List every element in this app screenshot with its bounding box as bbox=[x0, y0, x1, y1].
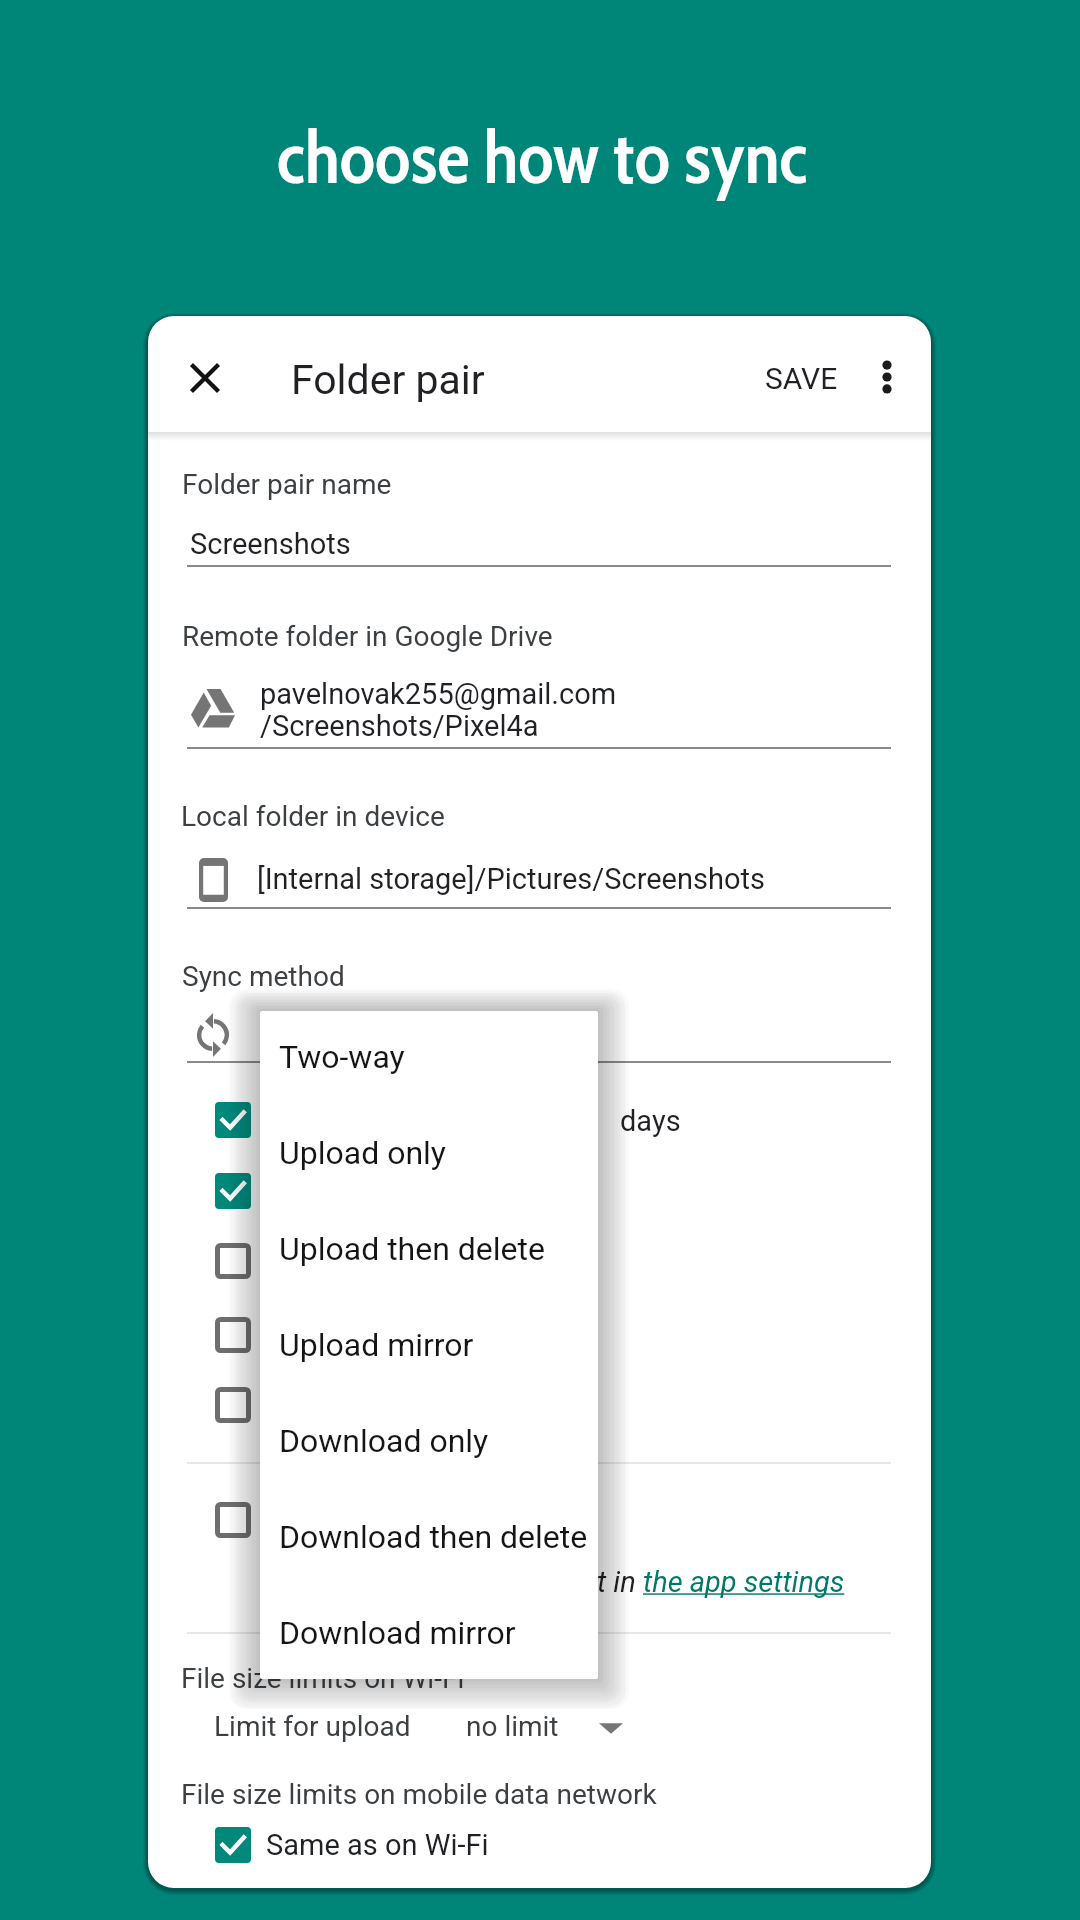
staticText: File size limits on Wi-Fi bbox=[181, 1662, 465, 1695]
button[interactable]: Checked bbox=[215, 1827, 251, 1863]
staticText: Upload only bbox=[279, 1134, 446, 1172]
staticText: Upload mirror bbox=[279, 1326, 474, 1364]
button[interactable]: Checked bbox=[215, 1173, 251, 1209]
button[interactable]: Download only bbox=[279, 1422, 591, 1494]
button[interactable]: Change limit bbox=[593, 1710, 629, 1746]
button[interactable]: Two-way bbox=[279, 1038, 591, 1110]
button[interactable]: Upload only bbox=[279, 1134, 591, 1206]
staticText: t in bbox=[597, 1565, 643, 1599]
button[interactable]: Folder pair bbox=[291, 356, 485, 404]
staticText: File size limits on mobile data network bbox=[181, 1778, 657, 1811]
staticText: no limit bbox=[466, 1710, 559, 1743]
button[interactable]: Unchecked bbox=[215, 1502, 251, 1538]
staticText: Sync method bbox=[182, 960, 345, 993]
button[interactable]: Close bbox=[174, 347, 236, 409]
button[interactable]: Download mirror bbox=[279, 1614, 591, 1686]
staticText: Local folder in device bbox=[181, 800, 445, 833]
staticText: SAVE bbox=[765, 361, 838, 396]
button[interactable]: Checked bbox=[215, 1102, 251, 1138]
staticText: Download mirror bbox=[279, 1614, 516, 1652]
staticText: [Internal storage]/Pictures/Screenshots bbox=[257, 862, 765, 896]
staticText: Two-way bbox=[279, 1038, 405, 1076]
button[interactable]: Unchecked bbox=[215, 1387, 251, 1423]
staticText: pavelnovak255@gmail.com bbox=[260, 677, 617, 711]
staticText: the app settings bbox=[643, 1565, 845, 1599]
button[interactable]: Upload mirror bbox=[279, 1326, 591, 1398]
button[interactable]: More options bbox=[855, 345, 919, 409]
button[interactable]: Unchecked bbox=[215, 1243, 251, 1279]
button[interactable]: Download then delete bbox=[279, 1518, 591, 1590]
button[interactable]: no limit bbox=[466, 1710, 559, 1743]
staticText: Download then delete bbox=[279, 1518, 588, 1556]
button[interactable]: the app settings bbox=[643, 1565, 845, 1599]
staticText: Folder pair bbox=[291, 356, 485, 404]
staticText: Folder pair name bbox=[182, 468, 392, 501]
staticText: Upload then delete bbox=[279, 1230, 546, 1268]
staticText: Screenshots bbox=[190, 527, 351, 561]
button[interactable]: SAVE bbox=[754, 349, 849, 408]
staticText: choose how to sync bbox=[277, 113, 808, 202]
staticText: Limit for upload bbox=[214, 1710, 411, 1743]
button[interactable]: Upload then delete bbox=[279, 1230, 591, 1302]
staticText: Same as on Wi-Fi bbox=[266, 1828, 489, 1862]
staticText: Remote folder in Google Drive bbox=[182, 620, 553, 653]
button[interactable]: Unchecked bbox=[215, 1317, 251, 1353]
staticText: /Screenshots/Pixel4a bbox=[260, 709, 539, 743]
staticText: days bbox=[620, 1104, 681, 1138]
staticText: Download only bbox=[279, 1422, 489, 1460]
